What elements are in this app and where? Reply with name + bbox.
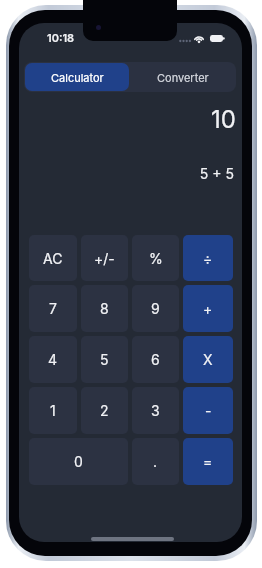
button[interactable]: 8: [81, 285, 128, 332]
staticText: .: [153, 453, 158, 470]
staticText: 5: [100, 351, 109, 368]
staticText: ÷: [203, 250, 213, 267]
staticText: 8: [100, 300, 109, 317]
button[interactable]: 0: [29, 438, 128, 485]
button[interactable]: 3: [132, 387, 179, 434]
staticText: 10: [211, 105, 236, 134]
staticText: 2: [100, 402, 109, 419]
button[interactable]: 5: [81, 336, 128, 383]
staticText: %: [149, 250, 163, 267]
button[interactable]: 1: [29, 387, 77, 434]
staticText: -: [205, 402, 212, 419]
button[interactable]: 4: [29, 336, 77, 383]
staticText: 3: [151, 402, 160, 419]
button[interactable]: %: [132, 235, 179, 281]
staticText: 6: [151, 351, 160, 368]
staticText: +: [203, 300, 213, 317]
staticText: 5 + 5: [199, 165, 234, 182]
button[interactable]: Calculator: [25, 63, 129, 91]
button[interactable]: 9: [132, 285, 179, 332]
staticText: 4: [48, 351, 58, 368]
staticText: =: [203, 453, 213, 470]
button[interactable]: -: [183, 387, 233, 434]
button[interactable]: +/-: [81, 235, 128, 281]
staticText: 9: [151, 300, 160, 317]
button[interactable]: 7: [29, 285, 77, 332]
staticText: Converter: [157, 71, 209, 84]
button[interactable]: ÷: [183, 235, 233, 281]
button[interactable]: .: [132, 438, 179, 485]
staticText: 0: [74, 453, 83, 470]
staticText: +/-: [94, 250, 115, 267]
staticText: 7: [49, 300, 57, 317]
button[interactable]: 6: [132, 336, 179, 383]
button[interactable]: =: [183, 438, 233, 485]
button[interactable]: X: [183, 336, 233, 383]
button[interactable]: AC: [29, 235, 77, 281]
staticText: AC: [43, 250, 63, 267]
staticText: 10:18: [47, 31, 75, 44]
button[interactable]: +: [183, 285, 233, 332]
staticText: X: [203, 351, 213, 368]
button[interactable]: Converter: [131, 63, 235, 91]
staticText: Calculator: [51, 71, 104, 84]
staticText: 1: [50, 402, 56, 419]
button[interactable]: 2: [81, 387, 128, 434]
